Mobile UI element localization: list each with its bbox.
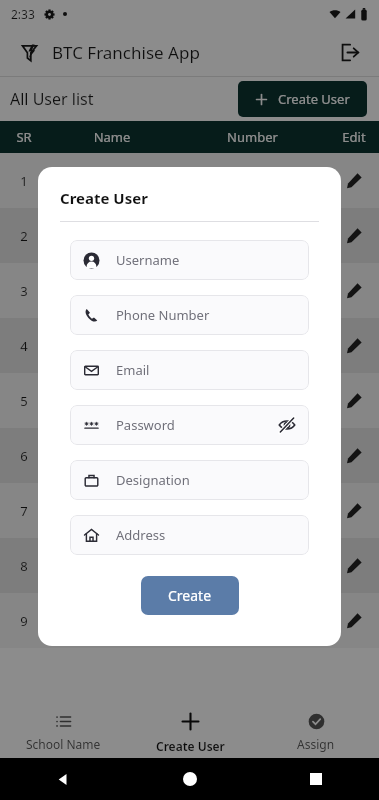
staticText: raj	[48, 227, 176, 245]
staticText: SR	[0, 128, 48, 146]
button[interactable]: School Name	[0, 706, 127, 758]
staticText: 9855555555	[176, 392, 329, 410]
staticText: 8	[0, 557, 48, 575]
button[interactable]: Phone Number	[70, 295, 309, 335]
staticText: All User list	[10, 88, 94, 110]
button[interactable]: Create	[141, 576, 239, 615]
staticText: Designation	[116, 471, 190, 489]
button[interactable]: Address	[70, 515, 309, 555]
button[interactable]: Show password	[274, 412, 300, 438]
staticText: Assign	[297, 736, 335, 752]
staticText: Create User	[60, 188, 148, 208]
staticText: Phone Number	[116, 306, 210, 324]
button[interactable]: 8	[0, 538, 379, 593]
button[interactable]: 1	[0, 153, 379, 208]
button[interactable]: Home	[127, 758, 253, 800]
staticText: Number	[176, 128, 329, 146]
staticText: 9829653265	[176, 612, 329, 630]
staticText: yashhh	[48, 612, 176, 630]
button[interactable]: 3	[0, 263, 379, 318]
button[interactable]: Password	[70, 405, 309, 445]
staticText: 9	[0, 612, 48, 630]
staticText: sunil	[48, 282, 176, 300]
button[interactable]: Recents	[253, 758, 379, 800]
button[interactable]: 4	[0, 318, 379, 373]
button[interactable]: 5	[0, 373, 379, 428]
staticText: arun	[48, 447, 176, 465]
staticText: Email	[116, 361, 150, 379]
staticText: Password	[116, 416, 175, 434]
staticText: Address	[116, 526, 166, 544]
staticText: BTC Franchise App	[52, 41, 200, 64]
staticText: 9866666666	[176, 447, 329, 465]
staticText: Edit	[329, 128, 379, 146]
button[interactable]: Create User	[127, 706, 253, 758]
staticText: 2	[0, 227, 48, 245]
staticText: 2:33	[11, 6, 35, 22]
staticText: Create	[168, 586, 212, 605]
button[interactable]: 6	[0, 428, 379, 483]
staticText: 7	[0, 502, 48, 520]
staticText: 9877777777	[176, 502, 329, 520]
staticText: 9822222222	[176, 227, 329, 245]
staticText: 5	[0, 392, 48, 410]
button[interactable]: Back	[0, 758, 127, 800]
staticText: School Name	[26, 736, 101, 752]
button[interactable]: Logout	[333, 36, 365, 68]
button[interactable]: 9	[0, 593, 379, 648]
staticText: 4	[0, 337, 48, 355]
staticText: kiran	[48, 337, 176, 355]
button[interactable]: Create User	[238, 81, 367, 117]
staticText: 9844444444	[176, 337, 329, 355]
staticText: 1	[0, 172, 48, 190]
staticText: neha	[48, 502, 176, 520]
button[interactable]: Username	[70, 240, 309, 280]
button[interactable]: Designation	[70, 460, 309, 500]
staticText: Create User	[156, 738, 225, 754]
staticText: Username	[116, 251, 180, 269]
button[interactable]: Assign	[253, 706, 379, 758]
staticText: 3	[0, 282, 48, 300]
button[interactable]: 7	[0, 483, 379, 538]
staticText: Name	[48, 128, 176, 146]
staticText: 6	[0, 447, 48, 465]
button[interactable]: 2	[0, 208, 379, 263]
staticText: deepa	[48, 392, 176, 410]
staticText: 9833333333	[176, 282, 329, 300]
staticText: Create User	[278, 90, 350, 108]
button[interactable]: Email	[70, 350, 309, 390]
